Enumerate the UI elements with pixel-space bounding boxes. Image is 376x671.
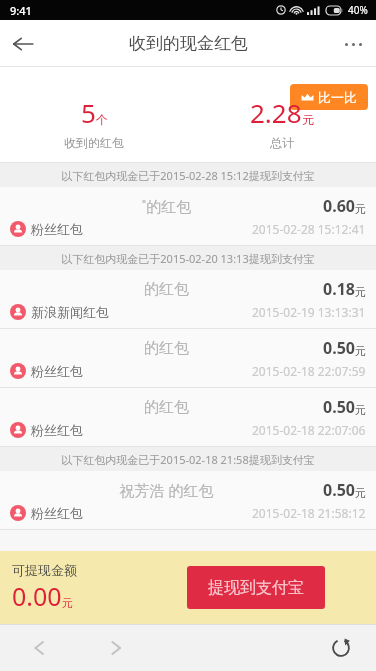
staticText: 粉丝红包 [31,505,83,521]
staticText: 2015-02-18 22:07:06 [252,422,366,438]
staticText: 粉丝红包 [31,363,83,379]
staticText: 2015-02-18 21:58:12 [252,505,366,521]
staticText: 2015-02-28 15:12:41 [252,221,366,237]
staticText: 9:41 [10,3,32,18]
button[interactable]: 的红包 [0,388,376,447]
staticText: 新浪新闻红包 [31,304,109,320]
button[interactable]: 提现到支付宝 [187,566,325,609]
staticText: 收到的现金红包 [129,33,248,54]
staticText: 0.60 [323,195,355,217]
staticText: 元 [355,486,366,500]
staticText: 元 [62,596,73,610]
staticText: 提现到支付宝 [208,578,304,598]
button[interactable]: 的红包 [0,270,376,329]
staticText: 祝芳浩 的红包 [10,480,323,500]
staticText: 0.50 [323,479,355,501]
staticText: 元 [355,285,366,299]
staticText: 的红包 [10,339,323,358]
staticText: 元 [355,403,366,417]
staticText: 以下红包内现金已于2015-02-28 15:12提现到支付宝 [61,168,315,183]
staticText: 可提现金额 [12,562,77,578]
staticText: 收到的红包 [64,135,124,150]
staticText: 比一比 [318,89,357,105]
staticText: 的红包 [10,280,323,299]
button[interactable]: 祝芳浩 的红包 [0,471,376,530]
button[interactable]: 比一比 [290,84,368,110]
button[interactable]: More options [330,21,376,67]
staticText: 以下红包内现金已于2015-02-18 21:58提现到支付宝 [61,452,315,467]
staticText: 元 [302,112,314,127]
button[interactable]: Back [18,627,60,669]
staticText: 以下红包内现金已于2015-02-20 13:13提现到支付宝 [61,251,315,266]
staticText: 总计 [270,135,294,150]
button[interactable]: Back [0,21,46,67]
staticText: 2015-02-18 22:07:59 [252,363,366,379]
staticText: 粉丝红包 [31,221,83,237]
staticText: 0.00 [12,579,62,613]
staticText: 元 [355,344,366,358]
staticText: 粉丝红包 [31,422,83,438]
staticText: 2015-02-19 13:13:31 [252,304,366,320]
staticText: 0.50 [323,396,355,418]
staticText: 0.50 [323,337,355,359]
button[interactable]: Forward [95,627,137,669]
button[interactable]: 的红包 [0,329,376,388]
button[interactable]: Refresh [320,627,362,669]
staticText: 0.18 [323,278,355,300]
staticText: ˚的红包 [10,196,323,216]
staticText: 个 [96,112,108,127]
staticText: 的红包 [10,398,323,417]
staticText: 40% [348,3,368,17]
staticText: 2.28 [250,95,302,130]
staticText: 元 [355,202,366,216]
staticText: 5 [81,95,96,130]
button[interactable]: ˚的红包 [0,187,376,246]
